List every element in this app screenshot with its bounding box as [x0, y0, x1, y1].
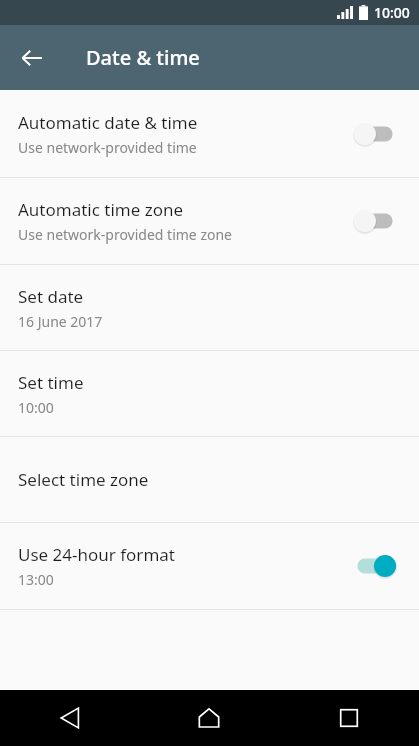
staticText: Set time: [18, 371, 84, 394]
staticText: Select time zone: [18, 468, 149, 491]
staticText: Date & time: [86, 44, 200, 71]
staticText: 10:00: [18, 398, 54, 417]
button[interactable]: Automatic time zone: [0, 178, 419, 264]
button[interactable]: Back: [0, 690, 139, 746]
staticText: 10:00: [374, 3, 410, 22]
button[interactable]: Back: [8, 34, 56, 82]
staticText: Use network-provided time: [18, 138, 197, 157]
button[interactable]: Automatic date & time: [347, 114, 403, 154]
staticText: Set date: [18, 285, 84, 308]
staticText: Use network-provided time zone: [18, 225, 232, 244]
staticText: 16 June 2017: [18, 312, 103, 331]
button[interactable]: Set date: [0, 265, 419, 350]
staticText: 13:00: [18, 570, 54, 589]
button[interactable]: Select time zone: [0, 437, 419, 522]
button[interactable]: Home: [139, 690, 279, 746]
button[interactable]: Automatic time zone: [347, 201, 403, 241]
staticText: Automatic date & time: [18, 111, 198, 134]
button[interactable]: Set time: [0, 351, 419, 436]
staticText: Automatic time zone: [18, 198, 184, 221]
button[interactable]: Recent apps: [279, 690, 419, 746]
staticText: Use 24-hour format: [18, 543, 175, 566]
button[interactable]: Automatic date & time: [0, 90, 419, 177]
button[interactable]: Use 24-hour format: [0, 523, 419, 609]
button[interactable]: Use 24-hour format: [347, 546, 403, 586]
